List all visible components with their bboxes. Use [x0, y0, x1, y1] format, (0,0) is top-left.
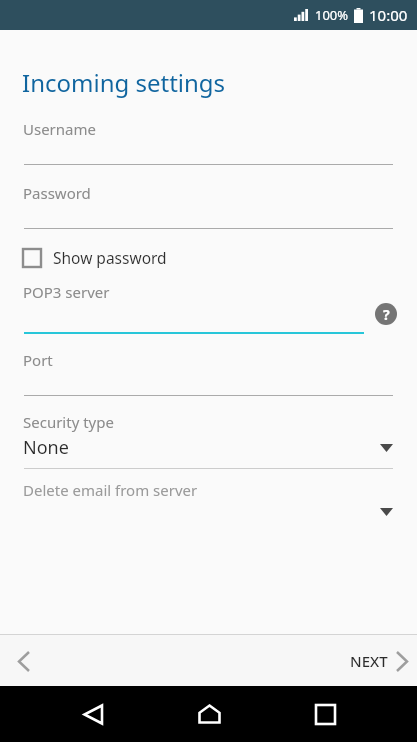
staticText: Show password	[53, 247, 167, 268]
button[interactable]: Port	[0, 350, 417, 396]
staticText: 100%	[315, 6, 349, 24]
staticText: NEXT	[350, 651, 388, 671]
staticText: None	[23, 435, 69, 460]
button[interactable]: Home	[185, 690, 233, 738]
button[interactable]: Username	[0, 119, 417, 165]
staticText: Security type	[23, 412, 114, 432]
staticText: Incoming settings	[22, 66, 226, 99]
button[interactable]: NEXT	[338, 643, 417, 679]
staticText: 10:00	[369, 5, 408, 25]
button[interactable]: Previous	[4, 641, 44, 681]
button[interactable]: Show password	[0, 242, 417, 273]
button[interactable]: POP3 server	[23, 282, 110, 302]
button[interactable]: Recents	[301, 690, 349, 738]
staticText: Password	[23, 183, 91, 203]
button[interactable]: Back	[68, 690, 116, 738]
staticText: ?	[383, 305, 390, 324]
staticText: Username	[23, 119, 96, 139]
button[interactable]: Help	[374, 302, 398, 326]
button[interactable]: Delete email from server	[0, 480, 417, 516]
button[interactable]: Security type	[0, 412, 417, 469]
staticText: Delete email from server	[23, 480, 198, 500]
button[interactable]: Password	[0, 183, 417, 229]
button[interactable]	[0, 304, 374, 334]
staticText: Port	[23, 350, 53, 370]
